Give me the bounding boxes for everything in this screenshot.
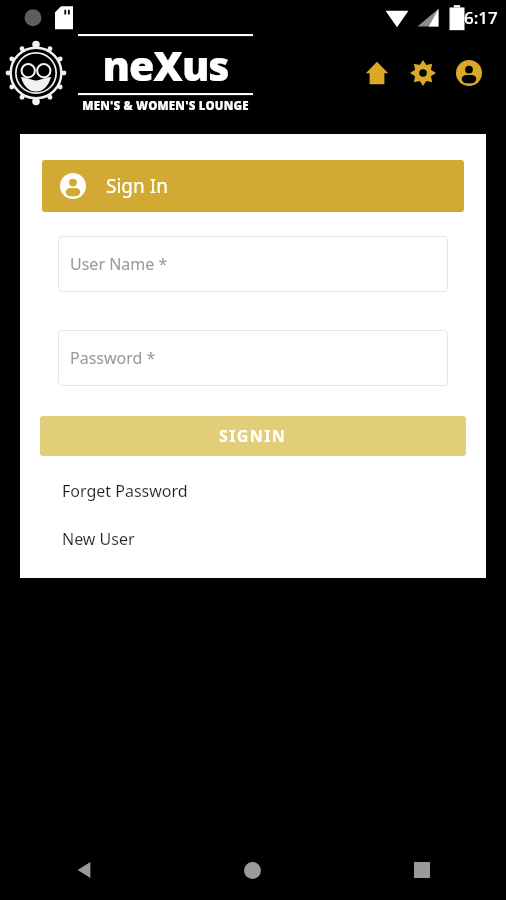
staticText: Password * <box>70 347 156 369</box>
button[interactable]: Forget Password <box>20 474 486 508</box>
button[interactable]: New User <box>20 522 486 556</box>
staticText: neXus <box>78 37 253 93</box>
button[interactable]: Sign In <box>42 160 464 212</box>
staticText: New User <box>62 528 135 550</box>
button[interactable]: Home <box>168 840 337 900</box>
button[interactable]: Account <box>446 50 492 96</box>
staticText: MEN'S & WOMEN'S LOUNGE <box>78 98 253 112</box>
button[interactable]: Password * <box>58 330 448 386</box>
button[interactable]: Recents <box>337 840 506 900</box>
staticText: User Name * <box>70 253 168 275</box>
staticText: 6:17 <box>464 6 498 29</box>
button[interactable]: Home <box>354 50 400 96</box>
button[interactable]: Settings <box>400 50 446 96</box>
staticText: Sign In <box>106 173 168 199</box>
button[interactable]: SIGNIN <box>40 416 466 456</box>
staticText: Forget Password <box>62 480 188 502</box>
button[interactable]: Back <box>0 840 168 900</box>
button[interactable]: User Name * <box>58 236 448 292</box>
staticText: SIGNIN <box>219 425 287 447</box>
